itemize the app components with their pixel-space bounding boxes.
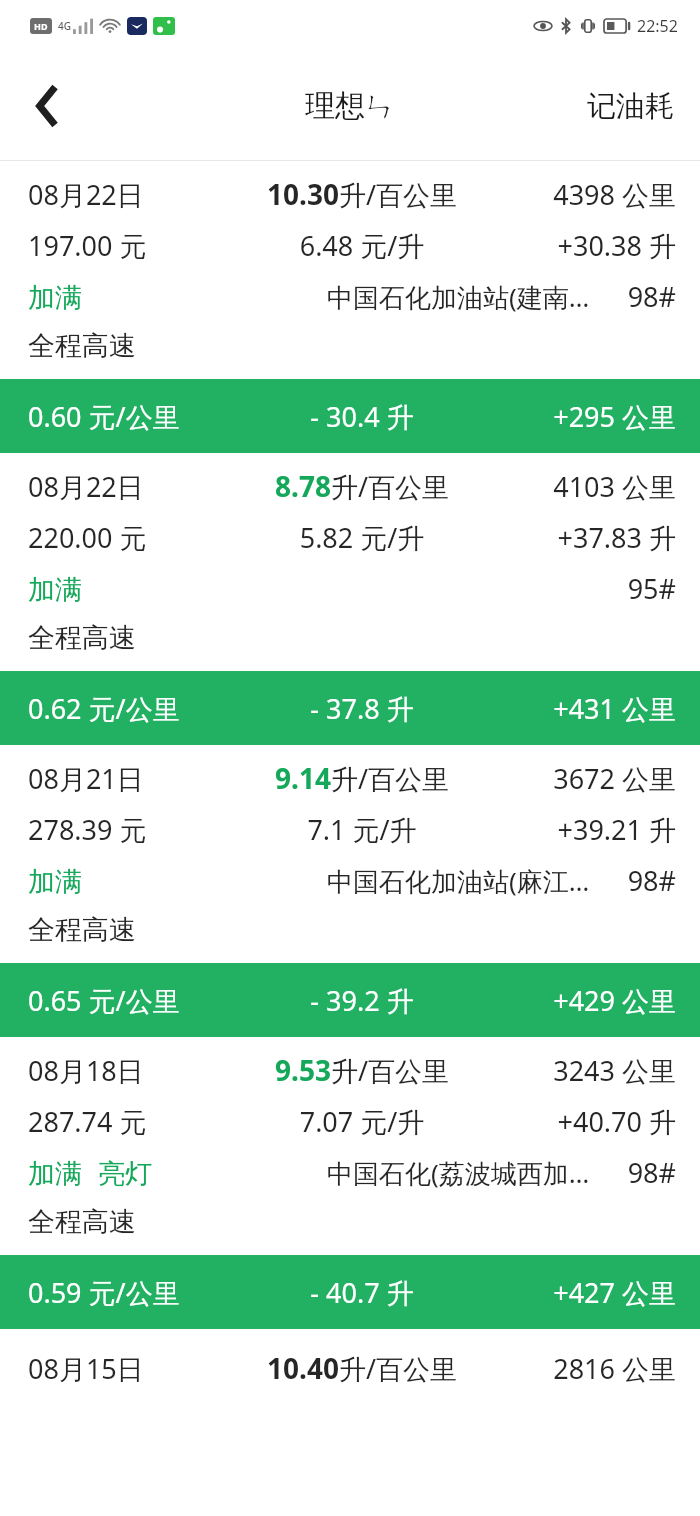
staticText: 08月15日 xyxy=(28,1350,228,1387)
staticText: 4G xyxy=(58,19,71,33)
staticText: - 30.4 升 xyxy=(228,398,496,435)
staticText: 全程高速 xyxy=(28,621,136,655)
staticText: 加满 xyxy=(28,865,82,899)
staticText: 全程高速 xyxy=(28,329,136,363)
staticText: 0.65 元/公里 xyxy=(28,982,228,1019)
staticText: 220.00 元 xyxy=(28,519,228,556)
staticText: 7.07 元/升 xyxy=(228,1103,496,1140)
staticText: 4398 公里 xyxy=(496,176,676,213)
staticText: 98# xyxy=(590,278,676,315)
button[interactable]: 08月15日 xyxy=(0,1329,700,1407)
button[interactable]: 08月18日 xyxy=(0,1037,700,1255)
staticText: +295 公里 xyxy=(496,398,676,435)
staticText: 加满 xyxy=(28,1157,82,1191)
staticText: 全程高速 xyxy=(28,1205,136,1239)
staticText: - 37.8 升 xyxy=(228,690,496,727)
staticText: 中国石化(荔波城西加… xyxy=(327,1155,590,1191)
staticText: - 40.7 升 xyxy=(228,1274,496,1311)
staticText: +37.83 升 xyxy=(496,519,676,556)
button[interactable]: 08月22日 xyxy=(0,453,700,671)
staticText: 升/百公里 xyxy=(339,1350,458,1387)
staticText: 9.53 xyxy=(275,1051,331,1089)
staticText: 10.40 xyxy=(267,1349,339,1387)
staticText: 8.78 xyxy=(275,467,331,505)
staticText: 加满 xyxy=(28,281,82,315)
staticText: 4103 公里 xyxy=(496,468,676,505)
staticText: 08月18日 xyxy=(28,1052,228,1089)
staticText: +39.21 升 xyxy=(496,811,676,848)
staticText: +40.70 升 xyxy=(496,1103,676,1140)
staticText: 亮灯 xyxy=(98,1157,152,1191)
staticText: 95# xyxy=(590,570,676,607)
staticText: +429 公里 xyxy=(496,982,676,1019)
staticText: 08月22日 xyxy=(28,176,228,213)
staticText: 升/百公里 xyxy=(331,760,450,797)
staticText: - 39.2 升 xyxy=(228,982,496,1019)
staticText: 197.00 元 xyxy=(28,227,228,264)
staticText: +431 公里 xyxy=(496,690,676,727)
staticText: 中国石化加油站(建南… xyxy=(327,279,590,315)
staticText: 记油耗 xyxy=(587,88,674,125)
staticText: 10.30 xyxy=(267,175,339,213)
button[interactable]: 0.62 元/公里 xyxy=(0,671,700,745)
staticText: HD xyxy=(34,20,48,32)
staticText: 22:52 xyxy=(637,15,678,37)
button[interactable]: 08月21日 xyxy=(0,745,700,963)
button[interactable]: 0.59 元/公里 xyxy=(0,1255,700,1329)
staticText: 3243 公里 xyxy=(496,1052,676,1089)
staticText: 9.14 xyxy=(275,759,331,797)
staticText: 理想ㄣ xyxy=(305,87,396,125)
staticText: 2816 公里 xyxy=(496,1350,676,1387)
staticText: +427 公里 xyxy=(496,1274,676,1311)
button[interactable]: 0.60 元/公里 xyxy=(0,379,700,453)
staticText: 升/百公里 xyxy=(331,1052,450,1089)
staticText: 287.74 元 xyxy=(28,1103,228,1140)
staticText: 中国石化加油站(麻江… xyxy=(327,863,590,899)
button[interactable]: 记油耗 xyxy=(575,78,686,135)
button[interactable]: 0.65 元/公里 xyxy=(0,963,700,1037)
staticText: 6.48 元/升 xyxy=(228,227,496,264)
staticText: 加满 xyxy=(28,573,82,607)
staticText: 7.1 元/升 xyxy=(228,811,496,848)
staticText: 3672 公里 xyxy=(496,760,676,797)
staticText: 0.59 元/公里 xyxy=(28,1274,228,1311)
staticText: 升/百公里 xyxy=(331,468,450,505)
staticText: 08月21日 xyxy=(28,760,228,797)
staticText: 278.39 元 xyxy=(28,811,228,848)
staticText: 升/百公里 xyxy=(339,176,458,213)
button[interactable]: Back xyxy=(14,72,82,140)
staticText: 98# xyxy=(590,862,676,899)
button[interactable]: 08月22日 xyxy=(0,161,700,379)
staticText: 08月22日 xyxy=(28,468,228,505)
staticText: 全程高速 xyxy=(28,913,136,947)
staticText: +30.38 升 xyxy=(496,227,676,264)
staticText: 98# xyxy=(590,1154,676,1191)
staticText: 0.62 元/公里 xyxy=(28,690,228,727)
staticText: 0.60 元/公里 xyxy=(28,398,228,435)
staticText: 5.82 元/升 xyxy=(228,519,496,556)
